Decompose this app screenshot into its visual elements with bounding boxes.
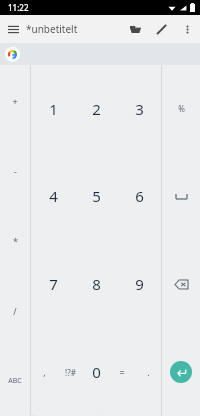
button[interactable]: 4 <box>31 152 75 240</box>
staticText: 2 <box>92 99 101 119</box>
button[interactable]: 7 <box>31 240 75 328</box>
button[interactable]: % <box>162 65 200 152</box>
button[interactable]: 9 <box>118 240 161 328</box>
button[interactable]: 3 <box>118 65 161 152</box>
staticText: 1 <box>49 99 58 119</box>
button[interactable]: 0 <box>83 328 109 416</box>
button[interactable]: 8 <box>75 240 118 328</box>
staticText: 3 <box>135 99 144 119</box>
button[interactable]: !?# <box>57 328 83 416</box>
staticText: 8 <box>92 274 101 294</box>
staticText: - <box>14 165 17 177</box>
button[interactable]: Space <box>162 152 200 240</box>
button[interactable]: / <box>0 276 30 346</box>
button[interactable]: + <box>0 65 30 136</box>
button[interactable]: * <box>0 206 30 276</box>
button[interactable]: 5 <box>75 152 118 240</box>
staticText: *unbetitelt <box>26 22 122 36</box>
button[interactable]: 6 <box>118 152 161 240</box>
button[interactable]: Menu <box>0 16 26 42</box>
staticText: + <box>12 95 18 107</box>
button[interactable]: Enter <box>170 361 192 383</box>
staticText: 11:22 <box>8 2 29 13</box>
staticText: % <box>178 103 185 114</box>
staticText: 6 <box>135 186 144 206</box>
staticText: = <box>119 366 125 378</box>
button[interactable]: = <box>109 328 135 416</box>
button[interactable]: Backspace <box>162 240 200 328</box>
staticText: * <box>13 235 18 247</box>
staticText: 0 <box>92 362 101 382</box>
staticText: . <box>147 366 150 378</box>
button[interactable]: Open folder <box>122 16 148 42</box>
staticText: ABC <box>8 376 22 386</box>
staticText: 5 <box>92 186 101 206</box>
staticText: / <box>13 305 17 317</box>
button[interactable]: More options <box>174 16 200 42</box>
staticText: !?# <box>65 367 76 378</box>
staticText: 4 <box>49 186 58 206</box>
staticText: 7 <box>49 274 58 294</box>
button[interactable]: Google <box>5 47 20 62</box>
staticText: , <box>43 366 46 378</box>
button[interactable]: 2 <box>75 65 118 152</box>
button[interactable]: ABC <box>0 346 30 416</box>
button[interactable]: 1 <box>31 65 75 152</box>
button[interactable]: Edit <box>148 16 174 42</box>
staticText: 9 <box>135 274 144 294</box>
